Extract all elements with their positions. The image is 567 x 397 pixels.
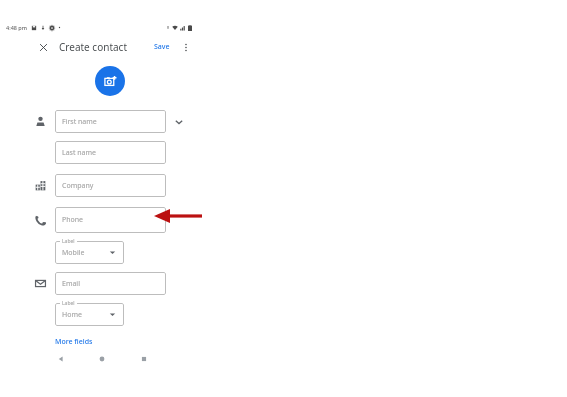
button[interactable]: Phone	[55, 207, 166, 233]
button[interactable]: Back	[40, 351, 81, 367]
staticText: Email	[62, 279, 80, 289]
button[interactable]: Expand name fields	[172, 115, 185, 128]
staticText: Mobile	[62, 248, 85, 258]
staticText: Phone	[62, 215, 84, 225]
button[interactable]: Add photo	[95, 66, 125, 96]
staticText: Company	[62, 181, 94, 191]
staticText: First name	[62, 117, 97, 127]
button[interactable]: Email	[55, 272, 166, 295]
staticText: Create contact	[59, 40, 128, 54]
staticText: More fields	[55, 337, 93, 347]
staticText: Label	[62, 300, 75, 307]
button[interactable]: Company	[55, 174, 166, 197]
button[interactable]: Home	[81, 351, 123, 367]
staticText: Save	[154, 42, 170, 52]
button[interactable]: More options	[180, 41, 192, 53]
button[interactable]: Close	[36, 40, 50, 54]
button[interactable]: Save	[151, 40, 173, 54]
button[interactable]	[55, 303, 124, 326]
staticText: Label	[62, 238, 75, 245]
button[interactable]: Recent apps	[123, 351, 165, 367]
staticText: 4:48 pm	[6, 24, 27, 31]
button[interactable]: More fields	[52, 336, 96, 348]
button[interactable]: Last name	[55, 141, 166, 164]
button[interactable]	[55, 241, 124, 264]
button[interactable]: First name	[55, 110, 166, 133]
staticText: Home	[62, 310, 82, 320]
staticText: Last name	[62, 148, 97, 158]
